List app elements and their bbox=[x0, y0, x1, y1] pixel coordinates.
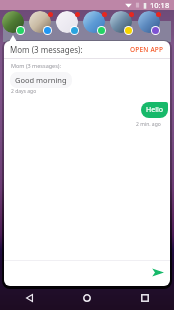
staticText: Mom (3 messages): bbox=[10, 44, 83, 55]
button[interactable]: Hello bbox=[141, 102, 168, 118]
button[interactable]: Conversation bubble 1 bbox=[2, 11, 24, 33]
button[interactable]: Conversation bubble 3 bbox=[56, 11, 78, 33]
staticText: 2 min. ago bbox=[136, 121, 161, 128]
button[interactable]: Back bbox=[0, 286, 58, 310]
button[interactable]: Conversation bubble 5 bbox=[110, 11, 132, 33]
button[interactable]: Home bbox=[58, 286, 116, 310]
staticText: Hello bbox=[146, 105, 163, 115]
staticText: 10:18 bbox=[150, 0, 170, 10]
staticText: OPEN APP bbox=[130, 45, 164, 54]
button[interactable]: Send bbox=[149, 263, 167, 281]
button[interactable]: Mom (3 messages): bbox=[4, 41, 170, 58]
button[interactable]: Conversation bubble 2 bbox=[29, 11, 51, 33]
staticText: Mom (3 messages): bbox=[11, 62, 61, 69]
button[interactable]: Conversation bubble 6 bbox=[138, 11, 160, 33]
button[interactable]: Recent apps bbox=[116, 286, 174, 310]
staticText: Good morning bbox=[15, 75, 67, 85]
staticText: 2 days ago bbox=[11, 88, 37, 95]
button[interactable]: Conversation bubble 4 bbox=[83, 11, 105, 33]
button[interactable]: OPEN APP bbox=[124, 42, 170, 57]
button[interactable]: Good morning bbox=[10, 72, 72, 88]
